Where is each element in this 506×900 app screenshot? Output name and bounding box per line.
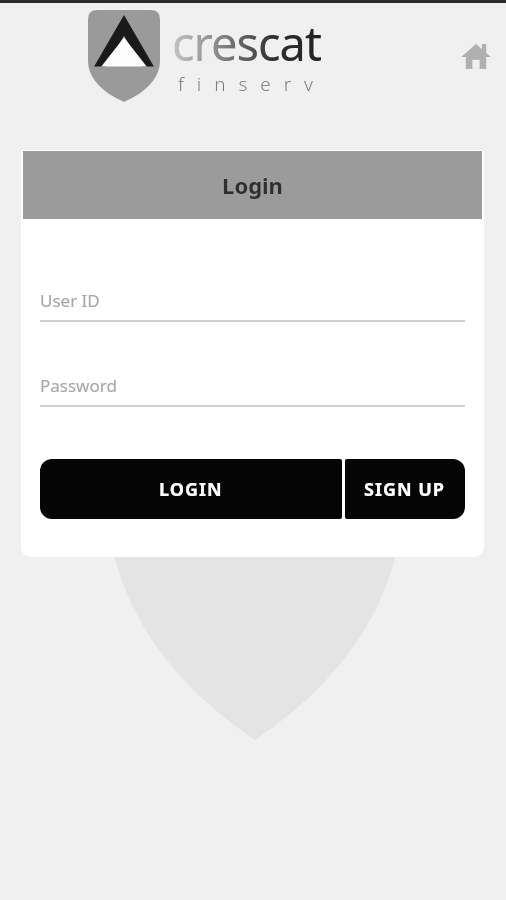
staticText: Password — [40, 374, 117, 397]
staticText: Login — [222, 170, 283, 200]
staticText: f i n s e r v — [178, 71, 318, 97]
staticText: crescat — [172, 11, 321, 75]
button[interactable]: crescat — [88, 10, 321, 102]
staticText: User ID — [40, 289, 100, 312]
button[interactable]: Home — [454, 34, 498, 78]
button[interactable]: LOGIN — [40, 459, 342, 519]
staticText: LOGIN — [159, 477, 223, 502]
staticText: SIGN UP — [364, 477, 446, 502]
button[interactable]: SIGN UP — [345, 459, 465, 519]
button[interactable]: User ID — [40, 289, 465, 322]
button[interactable]: Password — [40, 374, 465, 407]
